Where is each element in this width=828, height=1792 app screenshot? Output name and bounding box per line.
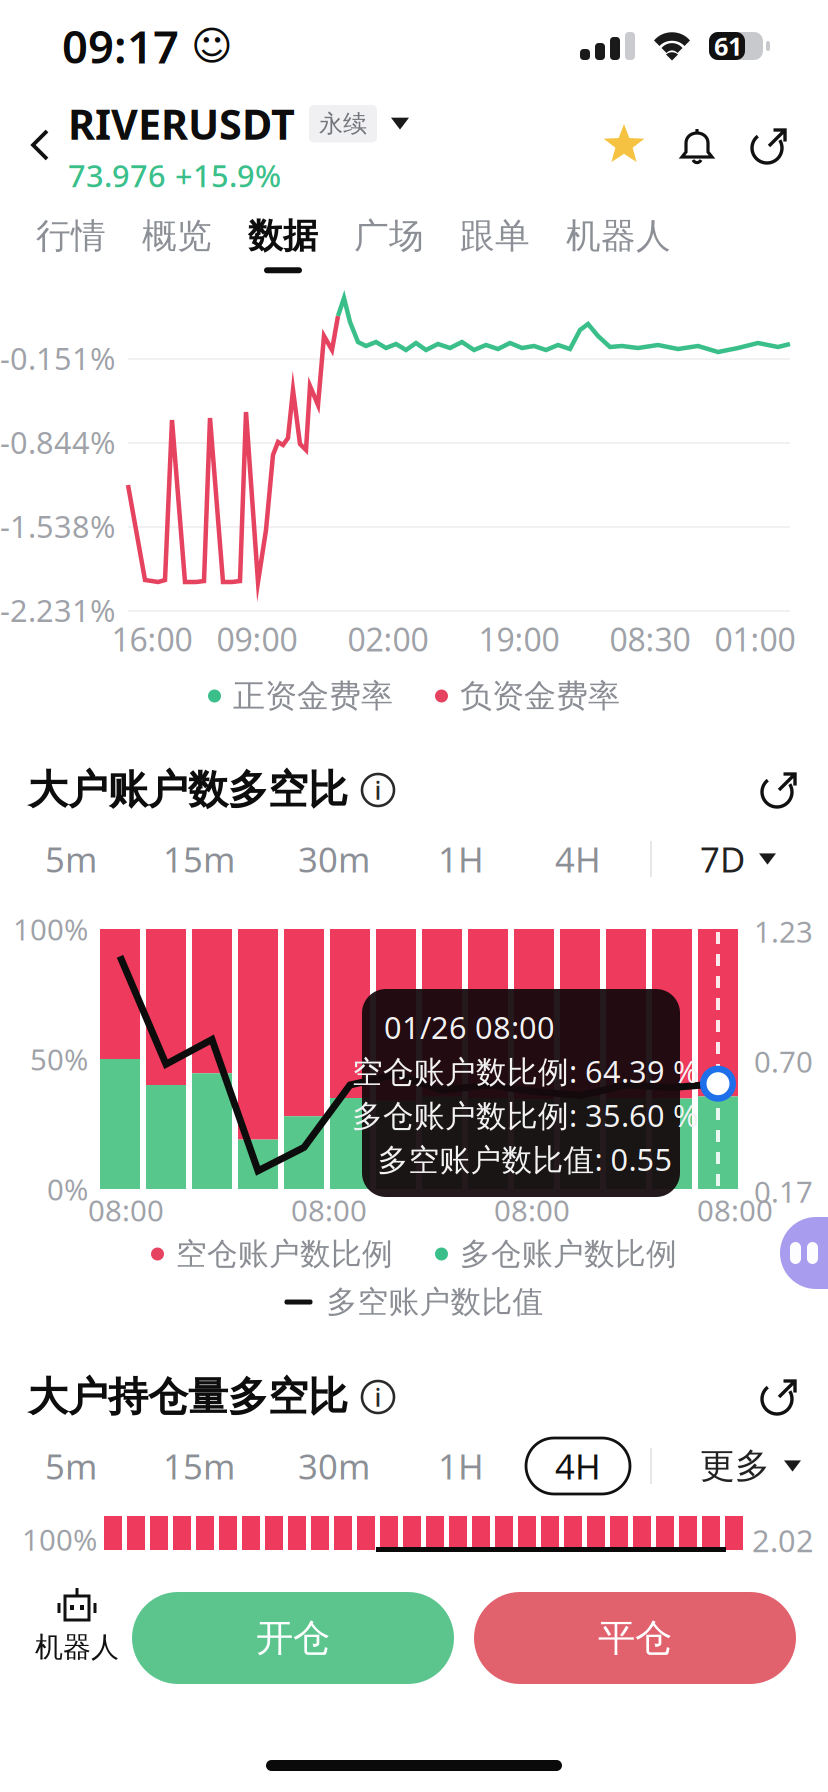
- staticText: 多仓账户数比例: 35.60 %: [352, 1095, 698, 1135]
- staticText: 09:17: [62, 16, 179, 76]
- staticText: +15.9%: [175, 155, 281, 196]
- staticText: 19:00: [478, 618, 559, 660]
- staticText: 5m: [45, 836, 97, 882]
- staticText: 大户持仓量多空比: [28, 1372, 348, 1421]
- staticText: -2.231%: [0, 590, 115, 630]
- button[interactable]: 机器人: [548, 207, 689, 273]
- staticText: i: [374, 773, 381, 807]
- staticText: -0.844%: [0, 422, 115, 462]
- staticText: 30m: [298, 836, 370, 882]
- staticText: -0.151%: [0, 338, 115, 378]
- staticText: 1H: [438, 1443, 484, 1489]
- button[interactable]: 4H: [526, 1438, 630, 1494]
- staticText: 73.976: [68, 155, 166, 196]
- staticText: 大户账户数多空比: [28, 765, 348, 814]
- staticText: 4H: [555, 1443, 601, 1489]
- staticText: 平仓: [598, 1615, 672, 1661]
- staticText: 1.23: [754, 912, 813, 951]
- button[interactable]: 5m: [19, 831, 123, 887]
- staticText: 08:00: [494, 1190, 570, 1229]
- staticText: 30m: [298, 1443, 370, 1489]
- staticText: 5m: [45, 1443, 97, 1489]
- staticText: 4H: [555, 836, 601, 882]
- button[interactable]: 15m: [147, 1438, 251, 1494]
- staticText: 08:30: [609, 618, 690, 660]
- button[interactable]: 1H: [409, 1438, 513, 1494]
- button[interactable]: 跟单: [442, 207, 548, 273]
- staticText: 7D: [700, 836, 745, 882]
- staticText: 0.70: [754, 1042, 813, 1081]
- staticText: 61: [714, 29, 742, 63]
- button[interactable]: Alerts: [678, 128, 716, 164]
- staticText: 08:00: [291, 1190, 367, 1229]
- staticText: 机器人: [566, 215, 671, 257]
- staticText: 16:00: [111, 618, 192, 660]
- staticText: 01:00: [714, 618, 795, 660]
- staticText: 正资金费率: [233, 676, 393, 716]
- button[interactable]: 广场: [336, 207, 442, 273]
- button[interactable]: Open chart: [758, 1376, 800, 1418]
- staticText: 15m: [163, 836, 235, 882]
- staticText: 08:00: [88, 1190, 164, 1229]
- staticText: -1.538%: [0, 506, 115, 546]
- button[interactable]: 4H: [526, 831, 630, 887]
- staticText: 100%: [13, 909, 88, 948]
- button[interactable]: Chat: [780, 1217, 828, 1289]
- button[interactable]: 数据: [230, 207, 336, 273]
- staticText: 行情: [36, 215, 106, 257]
- staticText: 多空账户数比值: [326, 1283, 543, 1321]
- button[interactable]: Share: [748, 125, 790, 167]
- button[interactable]: 平仓: [474, 1592, 796, 1684]
- staticText: 概览: [142, 215, 212, 257]
- button[interactable]: 更多: [700, 1438, 801, 1494]
- staticText: 跟单: [460, 215, 530, 257]
- staticText: 空仓账户数比例: 64.39 %: [352, 1051, 698, 1091]
- staticText: 多空账户数比值: 0.55: [377, 1139, 672, 1179]
- button[interactable]: 5m: [19, 1438, 123, 1494]
- staticText: 08:00: [697, 1190, 773, 1229]
- button[interactable]: 行情: [18, 207, 124, 273]
- staticText: 开仓: [256, 1615, 330, 1661]
- staticText: 负资金费率: [460, 676, 620, 716]
- staticText: 50%: [30, 1039, 88, 1078]
- staticText: 永续: [319, 109, 367, 138]
- button[interactable]: 概览: [124, 207, 230, 273]
- staticText: ☺: [191, 23, 233, 69]
- staticText: 多仓账户数比例: [460, 1235, 677, 1273]
- staticText: 100%: [22, 1520, 97, 1559]
- button[interactable]: 7D: [700, 831, 776, 887]
- button[interactable]: 永续: [309, 105, 409, 142]
- staticText: 0.17: [754, 1172, 813, 1211]
- button[interactable]: 机器人: [40, 1588, 114, 1664]
- staticText: 2.02: [752, 1520, 814, 1561]
- staticText: 02:00: [347, 618, 428, 660]
- staticText: 09:00: [216, 618, 297, 660]
- staticText: 0%: [47, 1169, 88, 1208]
- button[interactable]: Back: [30, 117, 68, 175]
- staticText: 01/26 08:00: [384, 1007, 555, 1047]
- button[interactable]: 15m: [147, 831, 251, 887]
- staticText: 空仓账户数比例: [176, 1235, 393, 1273]
- button[interactable]: Open chart: [758, 769, 800, 811]
- staticText: 广场: [354, 215, 424, 257]
- staticText: 更多: [700, 1445, 770, 1487]
- button[interactable]: 1H: [409, 831, 513, 887]
- staticText: RIVERUSDT: [68, 96, 295, 151]
- staticText: 机器人: [35, 1630, 119, 1664]
- staticText: 1H: [438, 836, 484, 882]
- button[interactable]: 30m: [282, 1438, 386, 1494]
- button[interactable]: 开仓: [132, 1592, 454, 1684]
- button[interactable]: Favorite: [602, 124, 646, 168]
- staticText: 数据: [248, 215, 318, 257]
- button[interactable]: 30m: [282, 831, 386, 887]
- staticText: 15m: [163, 1443, 235, 1489]
- staticText: i: [374, 1380, 381, 1414]
